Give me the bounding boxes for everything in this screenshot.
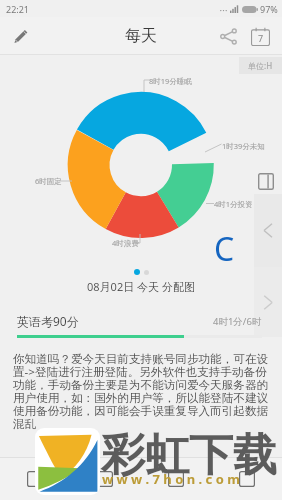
button[interactable]: Tasks — [70, 458, 140, 500]
staticText: C — [214, 227, 235, 271]
staticText: 7 — [258, 32, 264, 44]
button[interactable]: Edit — [6, 21, 36, 51]
button[interactable]: 英语考90分 — [0, 299, 282, 345]
button[interactable]: Share — [212, 20, 244, 52]
button[interactable]: Split view — [258, 173, 274, 190]
staticText: 08月02日 今天 分配图 — [87, 279, 195, 294]
button[interactable]: Stats — [140, 458, 211, 500]
staticText: 单位:H — [248, 60, 273, 71]
staticText: 4时1分/6时 — [213, 315, 262, 328]
button[interactable]: Previous day — [254, 194, 282, 267]
staticText: 4时浪费 — [112, 238, 139, 248]
staticText: 1时39分未知 — [222, 141, 265, 151]
staticText: 每天 — [125, 26, 157, 46]
staticText: 你知道吗？爱今天目前支持账号同步功能，可在设置->登陆进行注册登陆。另外软件也支… — [13, 352, 271, 431]
staticText: 6时固定 — [35, 176, 62, 186]
button[interactable]: Me — [211, 458, 282, 500]
staticText: w w w . 7 h o n . c o m — [102, 470, 240, 488]
staticText: 22:21 — [6, 3, 30, 15]
staticText: 4时1分投资 — [214, 199, 253, 209]
staticText: 8时19分睡眠 — [149, 76, 192, 86]
button[interactable]: Calendar — [244, 20, 276, 52]
staticText: 97% — [260, 3, 278, 15]
button[interactable]: 单位:H — [248, 60, 273, 71]
staticText: 英语考90分 — [17, 313, 79, 329]
staticText: 彩虹下载 — [101, 428, 277, 483]
button[interactable]: Today — [0, 458, 70, 500]
button[interactable]: Next day — [254, 267, 282, 337]
